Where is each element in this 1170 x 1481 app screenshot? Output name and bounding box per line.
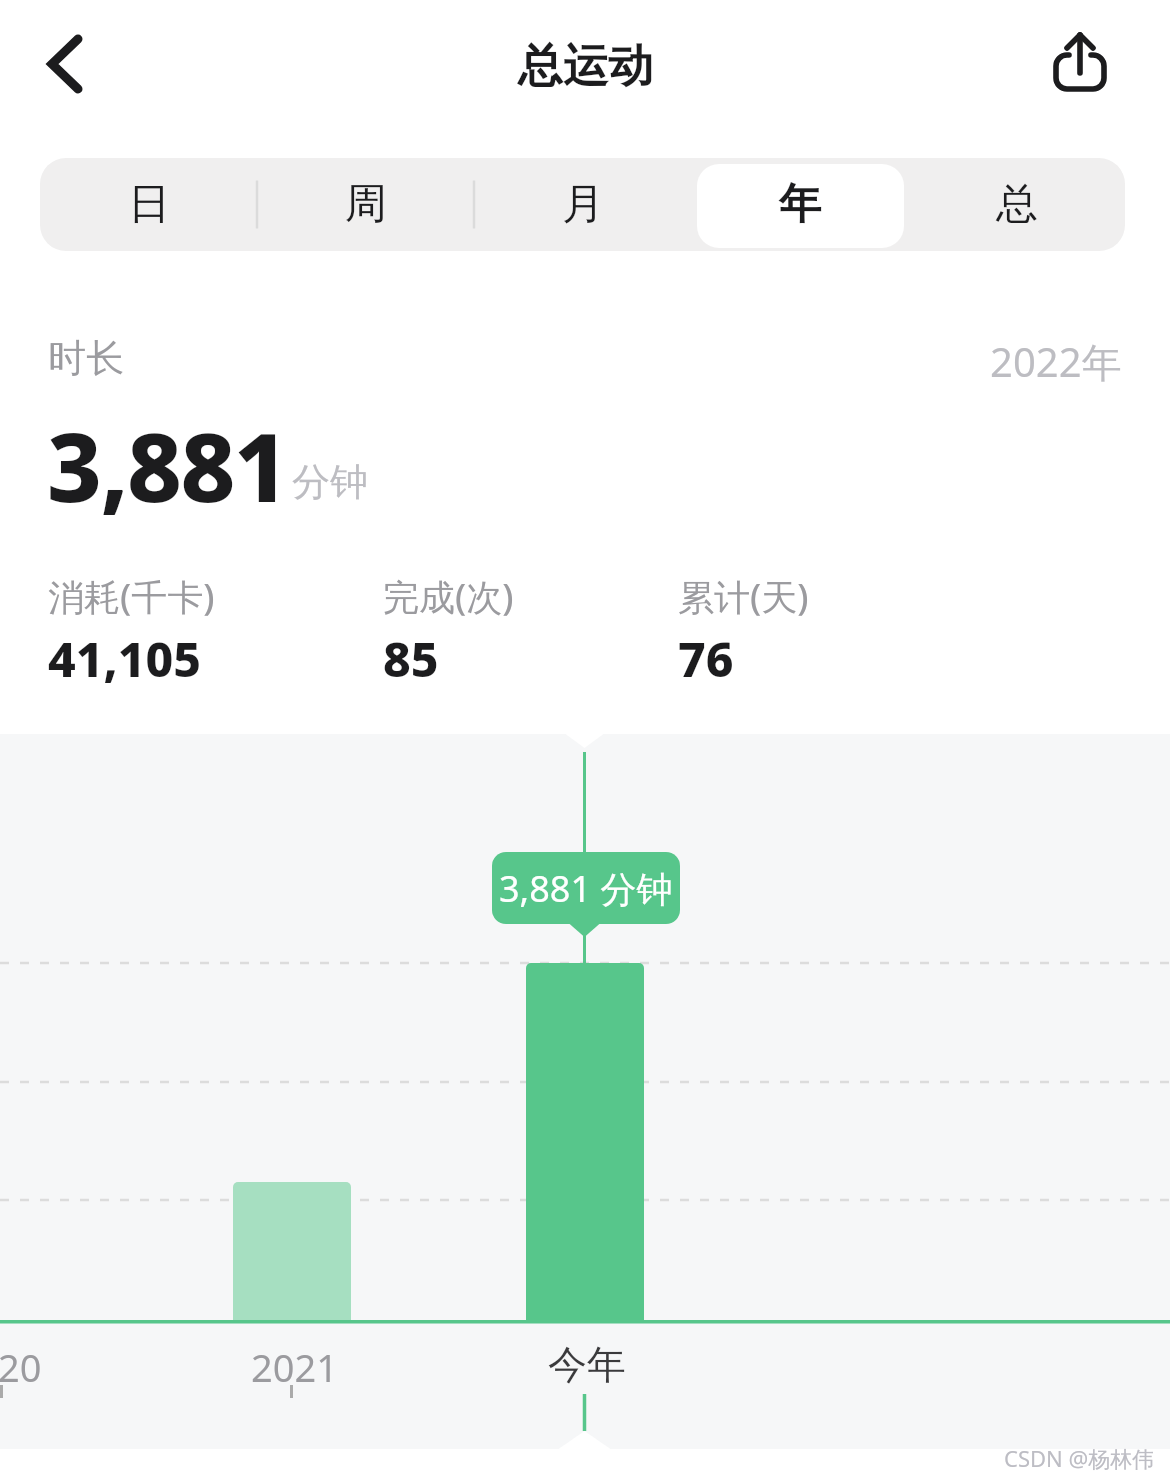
button[interactable]: 今年 bbox=[548, 1340, 626, 1389]
staticText: 总 bbox=[996, 178, 1038, 231]
button[interactable]: 日 bbox=[40, 158, 257, 251]
button[interactable]: 2021 bbox=[251, 1341, 338, 1393]
staticText: 消耗(千卡) bbox=[48, 572, 215, 621]
staticText: 3,881 bbox=[47, 400, 288, 529]
button[interactable] bbox=[1040, 22, 1120, 102]
button[interactable]: 年 bbox=[691, 158, 908, 251]
staticText: 时长 bbox=[48, 334, 124, 382]
staticText: 分钟 bbox=[292, 458, 368, 506]
staticText: 周 bbox=[345, 178, 387, 231]
staticText: 完成(次) bbox=[383, 572, 514, 621]
button[interactable] bbox=[31, 30, 99, 98]
staticText: CSDN @杨林伟 bbox=[1004, 1443, 1155, 1473]
staticText: 月 bbox=[562, 178, 604, 231]
button[interactable]: 20 bbox=[0, 1341, 42, 1393]
button[interactable]: 周 bbox=[257, 158, 474, 251]
staticText: 76 bbox=[678, 626, 734, 691]
staticText: 总运动 bbox=[518, 38, 653, 95]
staticText: 累计(天) bbox=[678, 572, 809, 621]
staticText: 85 bbox=[383, 626, 439, 691]
staticText: 41,105 bbox=[48, 626, 201, 691]
button[interactable]: 总 bbox=[908, 158, 1125, 251]
staticText: 2022年 bbox=[990, 334, 1122, 389]
staticText: 年 bbox=[779, 178, 821, 231]
staticText: 日 bbox=[128, 178, 170, 231]
staticText: 3,881 分钟 bbox=[499, 864, 673, 913]
button[interactable]: 月 bbox=[474, 158, 691, 251]
